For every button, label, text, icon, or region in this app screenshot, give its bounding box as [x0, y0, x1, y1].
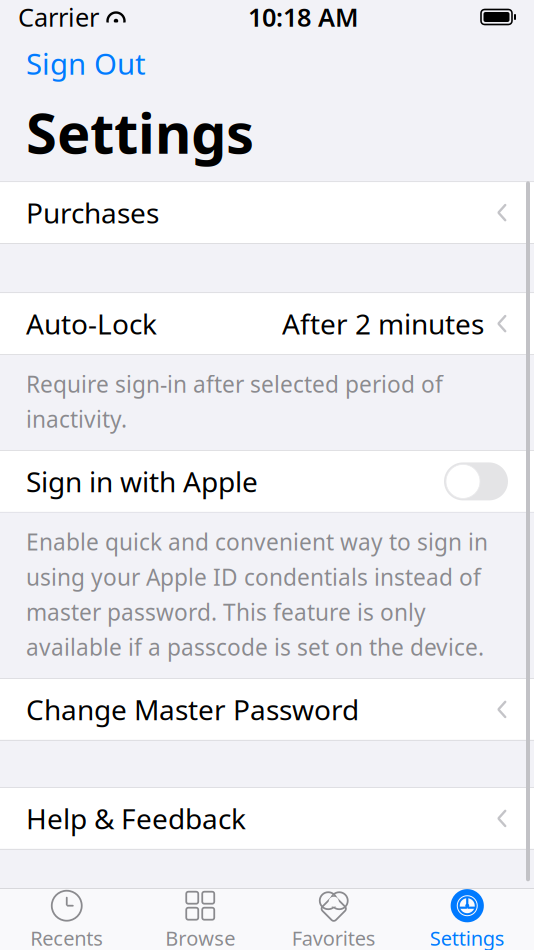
- button[interactable]: Change Master Password: [0, 679, 534, 740]
- button[interactable]: Auto-Lock: [0, 293, 534, 354]
- staticText: Carrier: [18, 0, 99, 34]
- staticText: Browse: [165, 925, 235, 950]
- staticText: 10:18 AM: [248, 0, 359, 34]
- button[interactable]: Purchases: [0, 182, 534, 243]
- button[interactable]: Settings: [400, 884, 534, 950]
- staticText: Auto-Lock: [26, 305, 157, 342]
- button[interactable]: Browse: [133, 884, 267, 950]
- button[interactable]: Favorites: [267, 884, 400, 950]
- button[interactable]: Help & Feedback: [0, 788, 534, 849]
- staticText: Require sign-in after selected period of…: [26, 369, 443, 434]
- button[interactable]: Sign Out: [26, 40, 146, 87]
- staticText: Help & Feedback: [26, 800, 246, 837]
- button[interactable]: Sign in with Apple: [0, 451, 534, 512]
- staticText: Settings: [26, 95, 254, 169]
- staticText: Sign Out: [26, 44, 146, 83]
- button[interactable]: Recents: [0, 884, 133, 950]
- button[interactable]: Advanced: [0, 897, 534, 950]
- staticText: Change Master Password: [26, 691, 359, 728]
- staticText: Purchases: [26, 194, 159, 231]
- staticText: Recents: [30, 925, 103, 950]
- staticText: Advanced: [26, 909, 154, 946]
- staticText: Sign in with Apple: [26, 463, 258, 500]
- staticText: Enable quick and convenient way to sign …: [26, 527, 488, 662]
- staticText: After 2 minutes: [282, 305, 484, 342]
- staticText: Settings: [430, 925, 505, 950]
- staticText: Favorites: [292, 925, 376, 950]
